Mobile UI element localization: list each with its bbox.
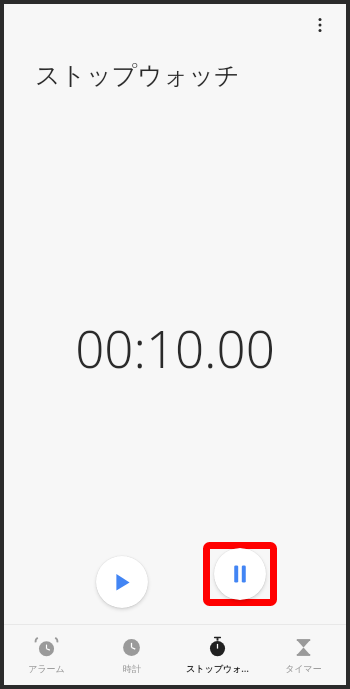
- staticText: 00:10.00: [4, 313, 346, 382]
- button[interactable]: ストップウォ…: [174, 625, 260, 685]
- button[interactable]: Start: [96, 556, 148, 608]
- staticText: アラーム: [28, 663, 65, 674]
- button[interactable]: More options: [302, 7, 338, 43]
- staticText: ストップウォッチ: [35, 60, 240, 91]
- staticText: 時計: [123, 663, 141, 674]
- staticText: ストップウォ…: [186, 662, 249, 674]
- button[interactable]: Pause: [214, 548, 266, 600]
- staticText: タイマー: [285, 663, 322, 674]
- button[interactable]: 時計: [89, 625, 174, 685]
- button[interactable]: タイマー: [260, 625, 346, 685]
- button[interactable]: アラーム: [4, 625, 89, 685]
